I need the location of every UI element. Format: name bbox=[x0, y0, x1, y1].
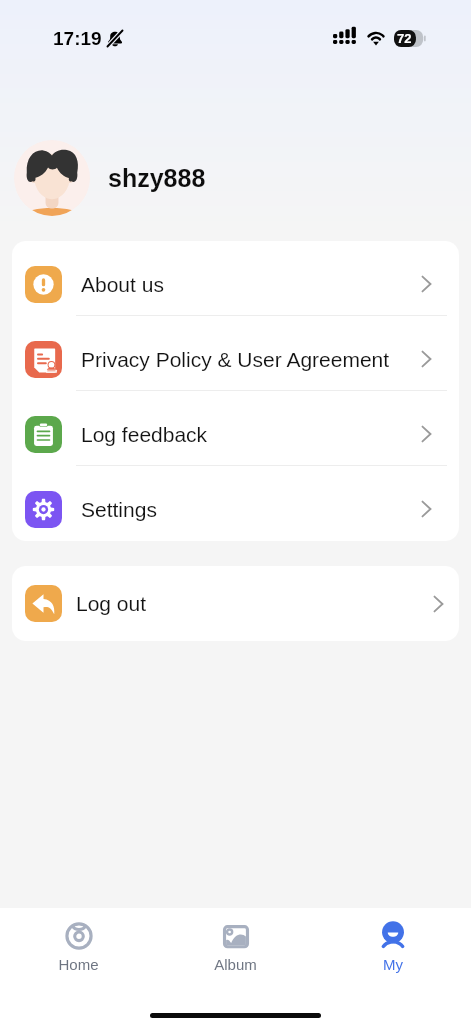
button[interactable]: Settings bbox=[12, 466, 459, 541]
staticText: About us bbox=[81, 273, 164, 296]
button[interactable]: Privacy Policy & User Agreement bbox=[12, 316, 459, 391]
staticText: shzy888 bbox=[108, 164, 206, 192]
staticText: Log feedback bbox=[81, 423, 208, 446]
staticText: Home bbox=[58, 956, 99, 973]
staticText: 72 bbox=[397, 31, 412, 46]
staticText: Log out bbox=[76, 592, 147, 615]
staticText: Privacy Policy & User Agreement bbox=[81, 348, 390, 371]
button[interactable]: Log feedback bbox=[12, 391, 459, 466]
button[interactable]: My bbox=[314, 908, 471, 990]
staticText: Album bbox=[214, 956, 257, 973]
staticText: 17:19 bbox=[53, 28, 102, 49]
staticText: My bbox=[383, 956, 403, 973]
button[interactable]: Home bbox=[0, 908, 157, 990]
staticText: Settings bbox=[81, 498, 157, 521]
button[interactable]: Log out bbox=[12, 566, 459, 641]
button[interactable]: Album bbox=[157, 908, 314, 990]
button[interactable]: About us bbox=[12, 241, 459, 316]
